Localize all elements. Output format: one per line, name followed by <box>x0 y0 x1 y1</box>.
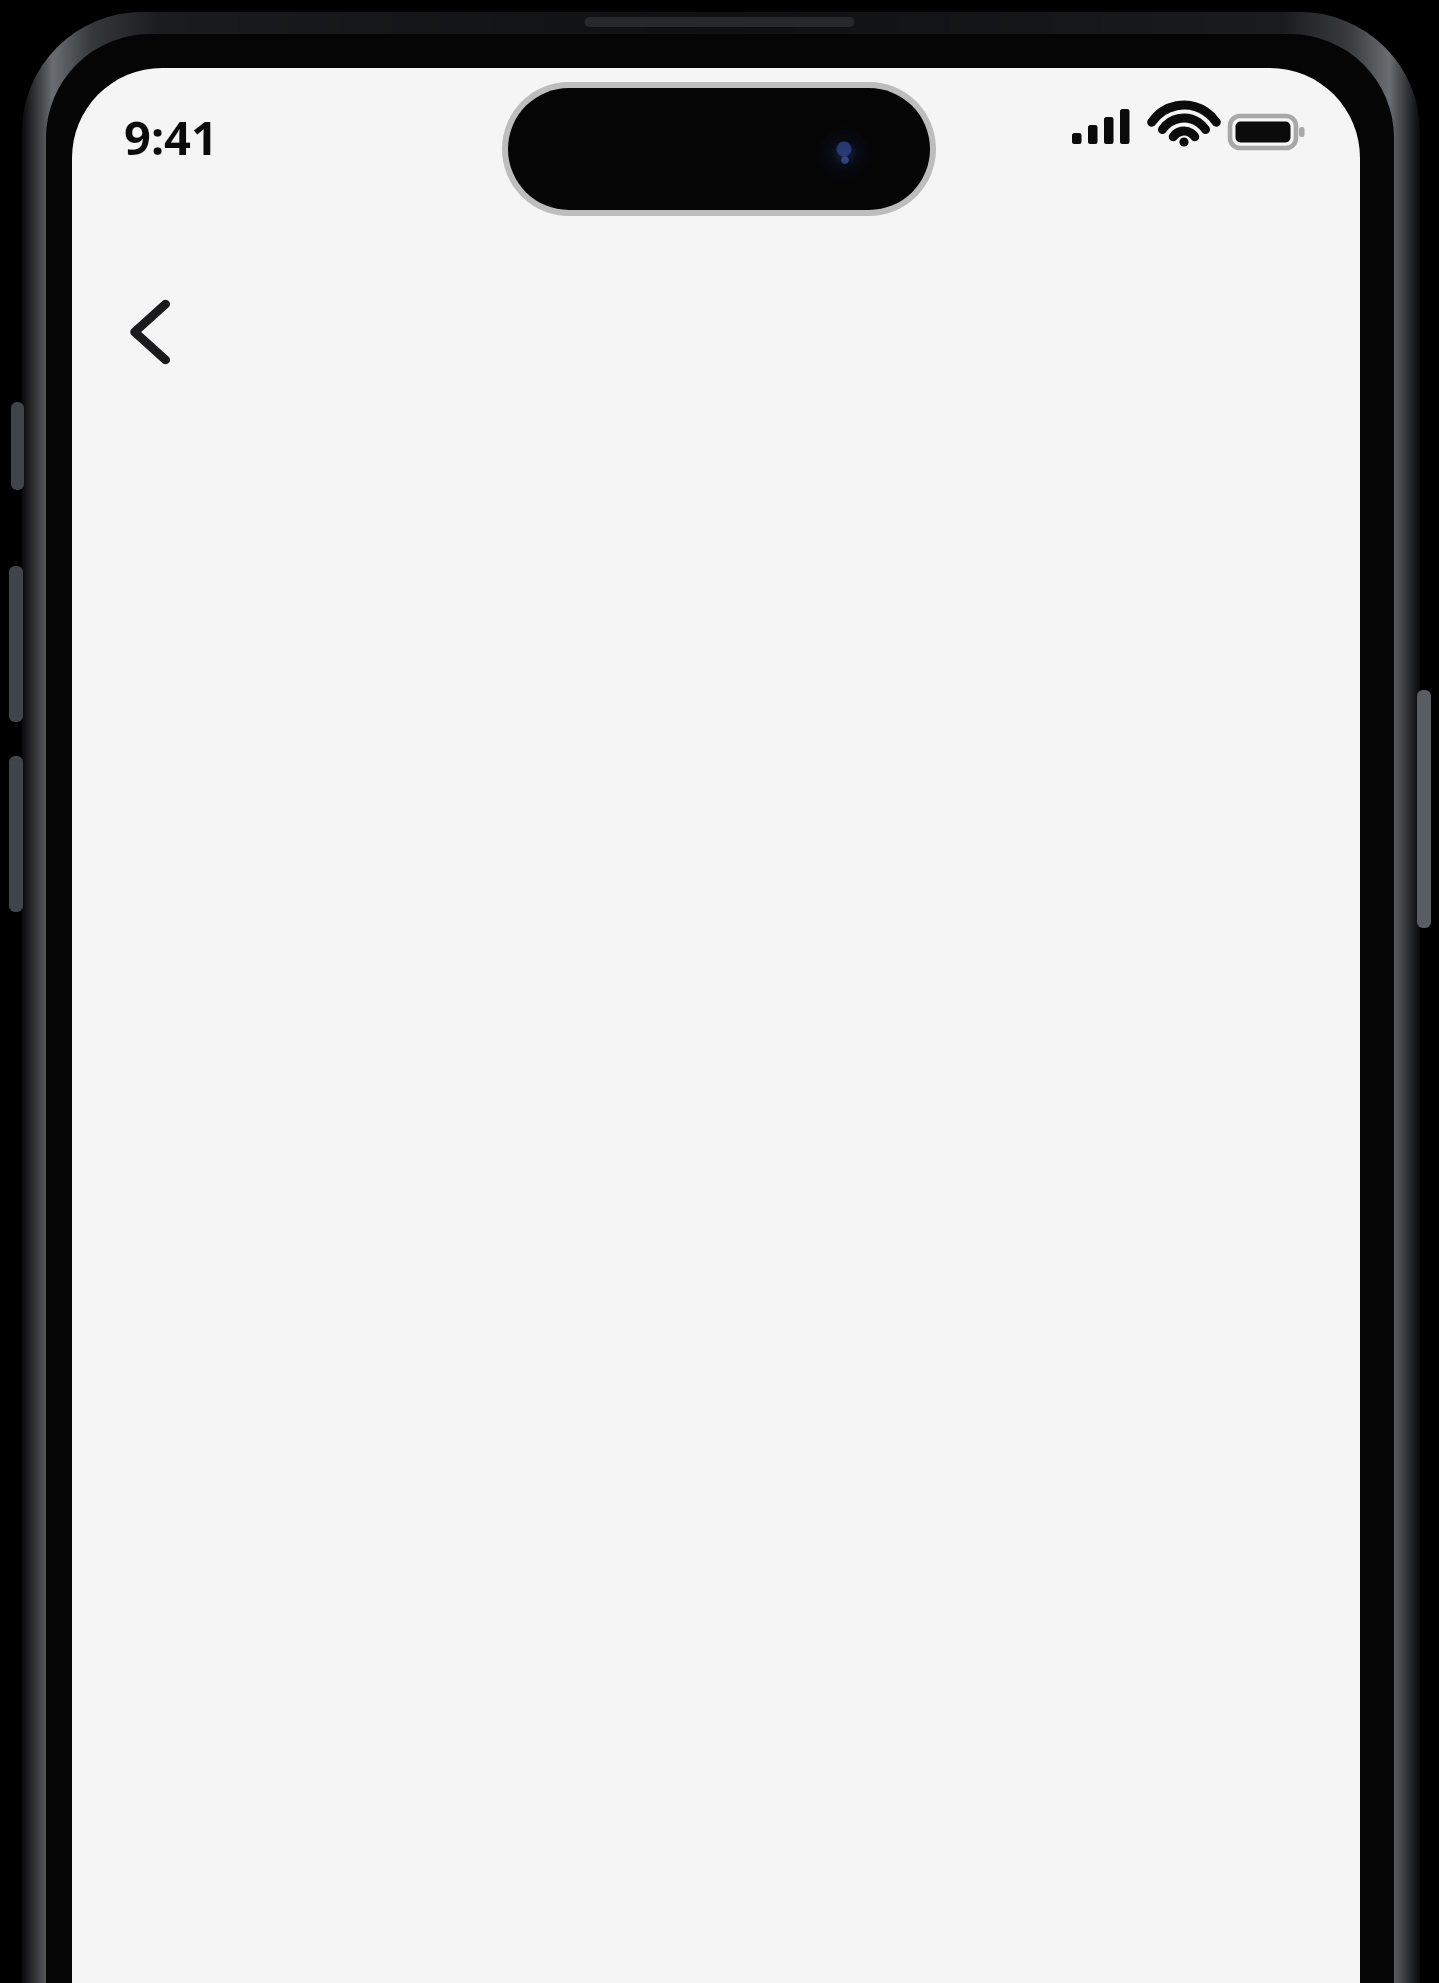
staticText: 9:41 <box>124 105 218 169</box>
button[interactable]: Back <box>92 272 212 392</box>
